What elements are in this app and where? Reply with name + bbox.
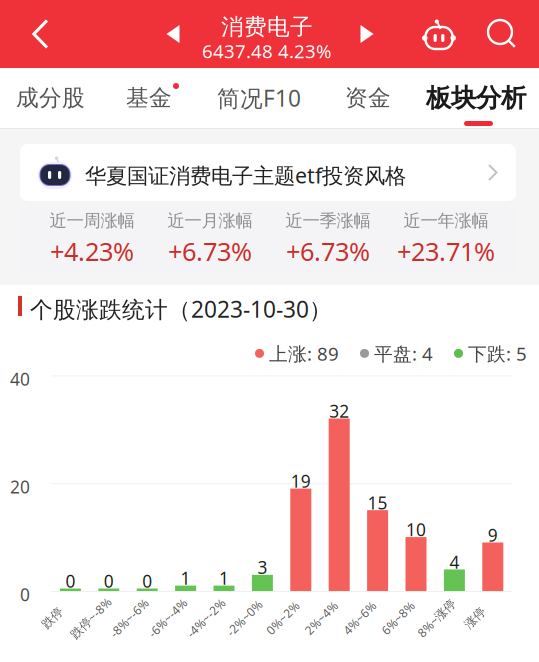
staticText: -6%~-4% xyxy=(143,610,192,626)
staticText: 涨停 xyxy=(463,611,487,625)
staticText: 40 xyxy=(10,367,30,390)
staticText: 消费电子 xyxy=(221,13,313,41)
staticText: +6.73% xyxy=(168,234,252,268)
staticText: 近一周涨幅 xyxy=(49,210,134,231)
staticText: 上涨: 89 xyxy=(269,341,339,366)
staticText: 简况F10 xyxy=(217,83,301,113)
staticText: 跌停~-8% xyxy=(65,610,117,626)
button[interactable]: Previous sector xyxy=(156,0,190,68)
staticText: 0 xyxy=(104,569,114,592)
staticText: +6.73% xyxy=(286,234,370,268)
staticText: 10 xyxy=(406,518,426,541)
staticText: 下跌: 5 xyxy=(468,341,527,366)
staticText: 华夏国证消费电子主题etf投资风格 xyxy=(85,161,406,189)
button[interactable]: 成分股 xyxy=(16,70,95,126)
staticText: 1 xyxy=(181,567,191,590)
staticText: 32 xyxy=(329,399,349,422)
staticText: 3 xyxy=(257,556,267,579)
staticText: 资金 xyxy=(345,84,391,112)
staticText: 1 xyxy=(219,567,229,590)
button[interactable]: AI assistant xyxy=(417,0,461,68)
button[interactable]: Back xyxy=(16,0,64,68)
staticText: -2%~0% xyxy=(222,610,267,626)
staticText: 0 xyxy=(20,583,30,606)
staticText: 个股涨跌统计（2023-10-30） xyxy=(30,294,332,324)
staticText: 6%~8% xyxy=(377,610,418,626)
staticText: 15 xyxy=(368,491,388,514)
staticText: 8%~涨停 xyxy=(412,610,460,626)
staticText: 2%~4% xyxy=(301,610,342,626)
staticText: -8%~-6% xyxy=(105,610,154,626)
button[interactable]: Search xyxy=(480,0,524,68)
staticText: 板块分析 xyxy=(426,82,526,113)
staticText: 平盘: 4 xyxy=(374,341,433,366)
staticText: 20 xyxy=(10,475,30,498)
button[interactable]: 资金 xyxy=(345,70,401,126)
staticText: 成分股 xyxy=(16,84,85,112)
staticText: 0 xyxy=(65,569,75,592)
staticText: -4%~-2% xyxy=(181,610,230,626)
staticText: 0%~2% xyxy=(262,610,303,626)
button[interactable]: 简况F10 xyxy=(217,70,313,126)
staticText: 4 xyxy=(449,550,459,573)
staticText: 0 xyxy=(142,569,152,592)
button[interactable]: 板块分析 xyxy=(426,70,539,126)
staticText: 近一月涨幅 xyxy=(167,210,252,231)
staticText: 近一季涨幅 xyxy=(285,210,370,231)
staticText: +23.71% xyxy=(397,234,495,268)
staticText: 19 xyxy=(291,470,311,493)
staticText: 基金 xyxy=(126,84,172,112)
button[interactable]: 华夏国证消费电子主题etf投资风格 xyxy=(20,144,516,201)
staticText: 跌停 xyxy=(40,611,64,625)
staticText: 4%~6% xyxy=(339,610,380,626)
staticText: 近一年涨幅 xyxy=(403,210,488,231)
button[interactable]: Next sector xyxy=(350,0,384,68)
staticText: +4.23% xyxy=(50,234,134,268)
staticText: 6437.48 4.23% xyxy=(202,39,332,63)
staticText: 9 xyxy=(488,523,498,546)
button[interactable]: 基金 xyxy=(126,70,183,126)
